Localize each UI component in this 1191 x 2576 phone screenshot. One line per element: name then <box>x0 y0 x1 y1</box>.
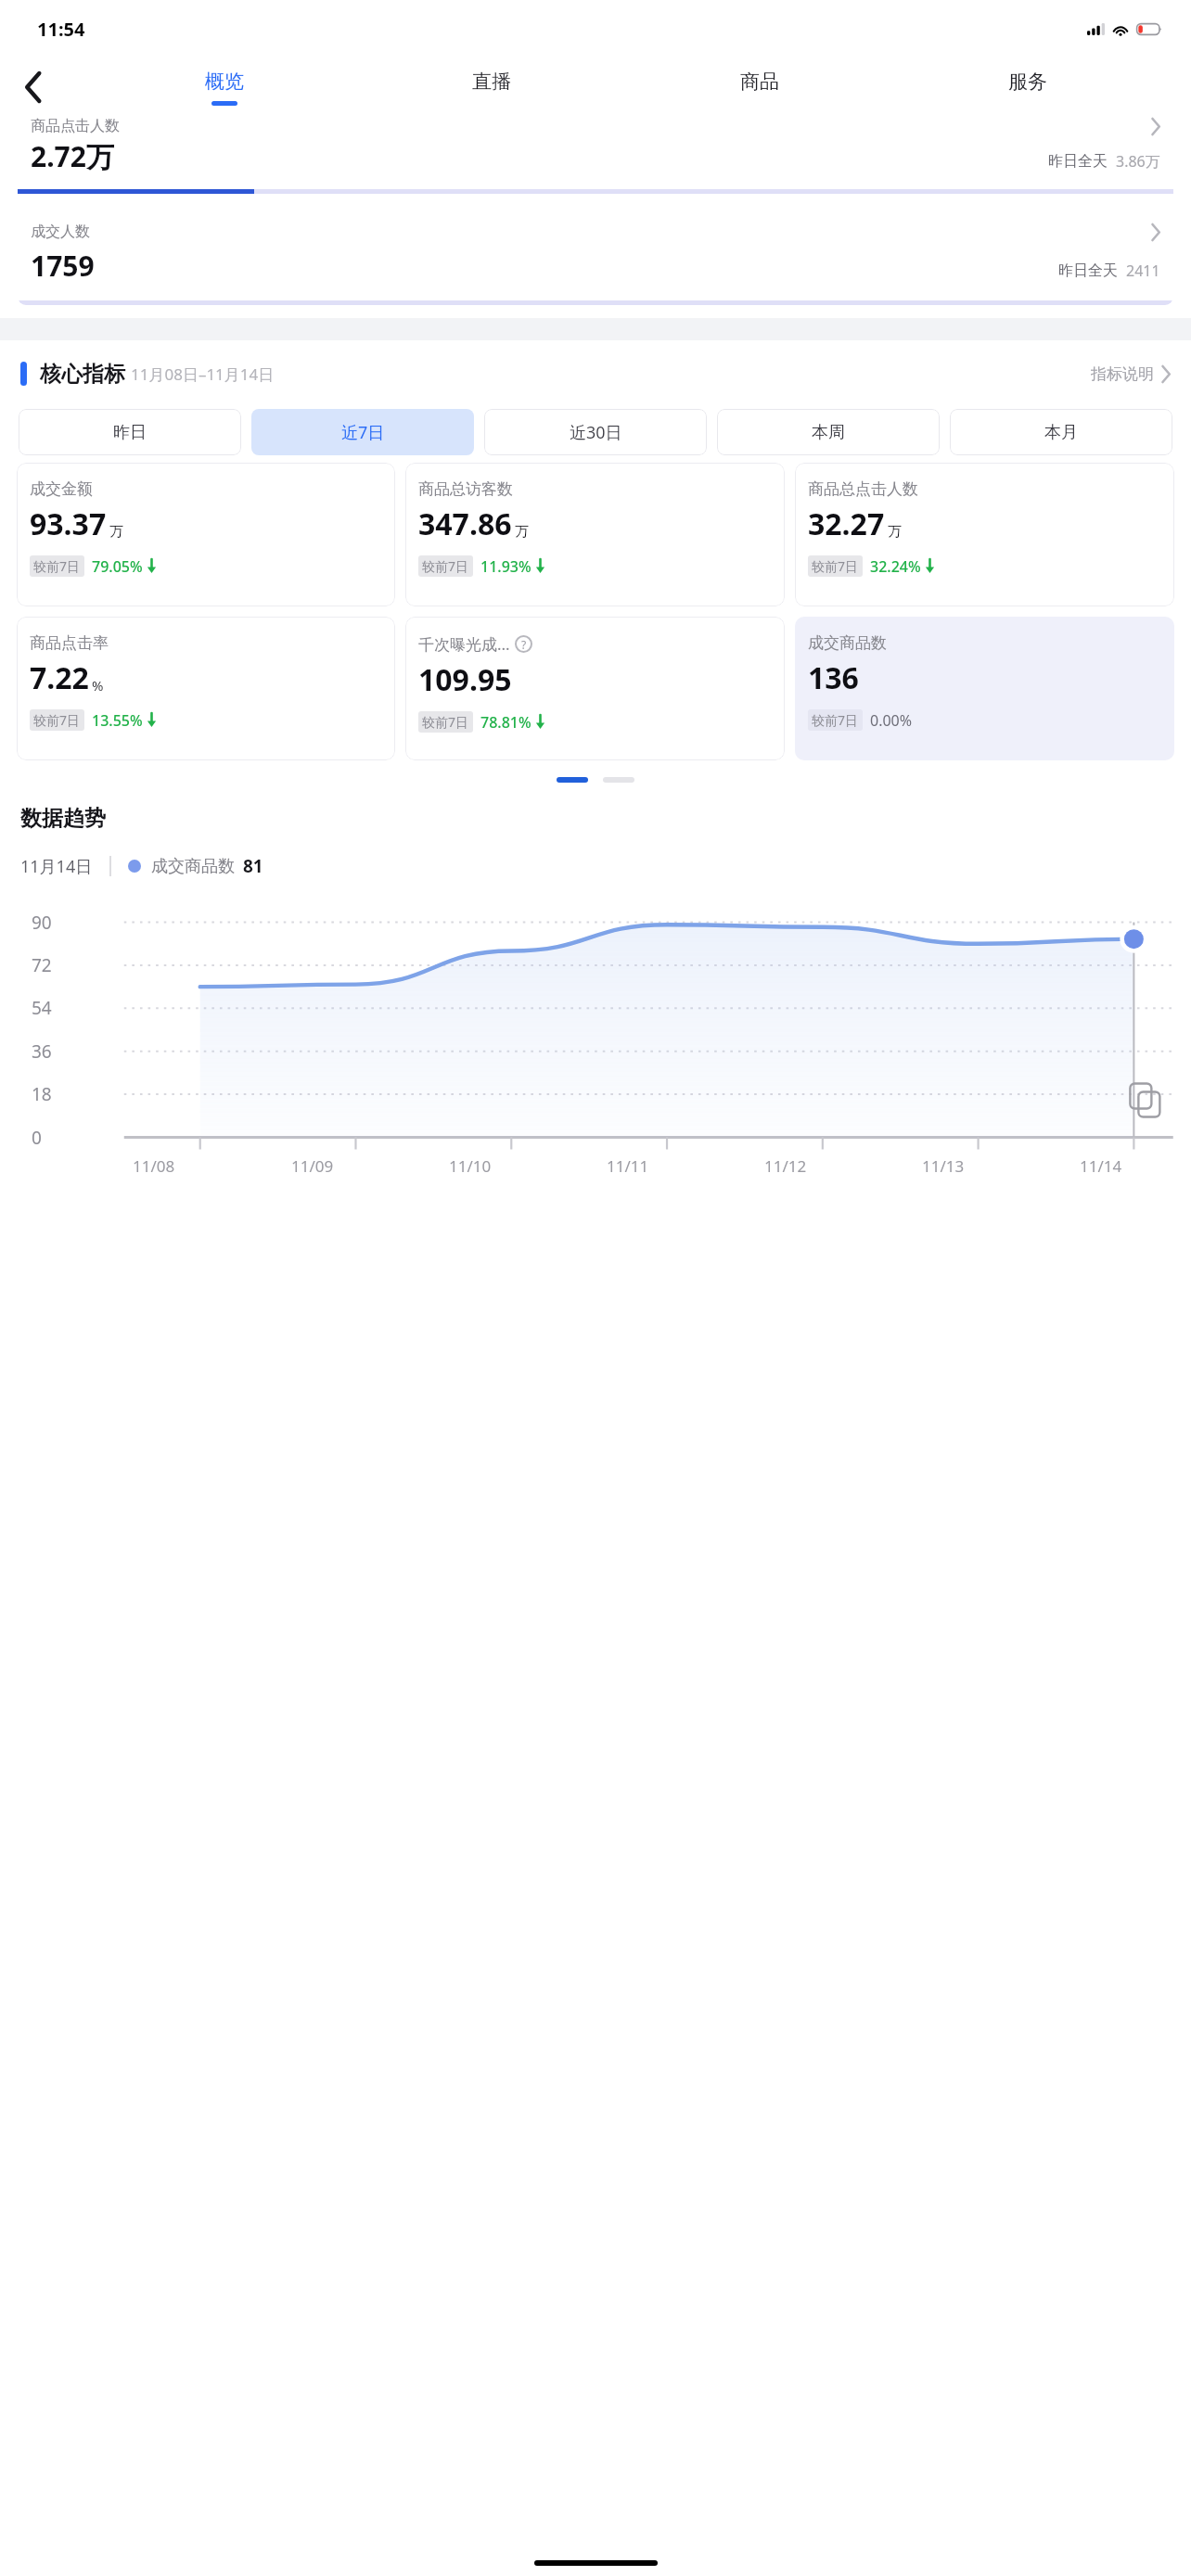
staticText: 2411 <box>1126 261 1160 281</box>
staticText: 较前7日 <box>812 711 859 729</box>
staticText: 万 <box>109 523 123 541</box>
staticText: 较前7日 <box>422 713 469 731</box>
staticText: 千次曝光成... <box>418 633 510 655</box>
staticText: 109.95 <box>418 659 512 700</box>
staticText: 11/13 <box>922 1155 965 1177</box>
button[interactable]: 商品总点击人数 <box>795 463 1174 606</box>
staticText: 万 <box>888 523 902 541</box>
staticText: 成交商品数 <box>151 856 235 877</box>
staticText: 指标说明 <box>1091 364 1154 384</box>
staticText: % <box>92 676 104 695</box>
staticText: 较前7日 <box>33 557 81 575</box>
staticText: 11/12 <box>764 1155 807 1177</box>
button[interactable]: 本月 <box>950 409 1172 455</box>
button[interactable]: 成交商品数 <box>795 617 1174 760</box>
staticText: 商品 <box>740 70 779 94</box>
staticText: 2.72万 <box>31 137 114 175</box>
staticText: 11.93% <box>480 556 531 577</box>
button[interactable]: 本周 <box>717 409 940 455</box>
staticText: 本月 <box>1044 422 1078 443</box>
staticText: 3.86万 <box>1116 151 1160 172</box>
staticText: 昨日 <box>113 422 147 443</box>
staticText: 直播 <box>472 70 511 94</box>
staticText: 成交金额 <box>30 479 93 499</box>
staticText: 11/11 <box>607 1155 649 1177</box>
staticText: 0 <box>32 1126 42 1150</box>
staticText: 0.00% <box>870 710 913 731</box>
button[interactable]: 成交人数 <box>18 206 1173 305</box>
button[interactable]: 指标说明 <box>1091 364 1171 384</box>
staticText: 本周 <box>812 422 845 443</box>
button[interactable]: 商品 <box>625 57 893 117</box>
staticText: 较前7日 <box>33 711 81 729</box>
staticText: 商品点击率 <box>30 633 109 653</box>
staticText: 昨日全天 <box>1048 152 1108 171</box>
button[interactable]: 近7日 <box>251 409 474 455</box>
staticText: 11/09 <box>291 1155 334 1177</box>
button[interactable]: 成交金额 <box>17 463 395 606</box>
staticText: 347.86 <box>418 504 512 544</box>
staticText: 较前7日 <box>422 557 469 575</box>
staticText: 成交人数 <box>31 223 90 241</box>
staticText: 72 <box>32 953 52 977</box>
button[interactable]: 概览 <box>91 57 358 117</box>
button[interactable]: 商品点击人数 <box>18 117 1173 194</box>
staticText: 32.24% <box>870 556 921 577</box>
staticText: 79.05% <box>92 556 143 577</box>
staticText: 32.27 <box>808 504 885 544</box>
staticText: 81 <box>243 854 263 878</box>
button[interactable]: 昨日 <box>19 409 241 455</box>
staticText: ? <box>521 637 527 652</box>
staticText: 11:54 <box>37 17 85 42</box>
staticText: 1759 <box>31 247 95 285</box>
staticText: 11/10 <box>449 1155 492 1177</box>
staticText: 136 <box>808 657 859 698</box>
staticText: 近30日 <box>570 421 622 444</box>
button[interactable]: 服务 <box>893 57 1161 117</box>
staticText: 11月08日–11月14日 <box>131 363 275 385</box>
button[interactable]: 商品点击率 <box>17 617 395 760</box>
staticText: 万 <box>515 523 529 541</box>
button[interactable]: 千次曝光成... <box>405 617 785 760</box>
staticText: 90 <box>32 911 52 935</box>
button[interactable]: Back <box>7 61 59 113</box>
staticText: 服务 <box>1008 70 1047 94</box>
staticText: 成交商品数 <box>808 633 887 653</box>
staticText: 11月14日 <box>20 855 93 878</box>
staticText: 93.37 <box>30 504 107 544</box>
staticText: 商品点击人数 <box>31 117 120 135</box>
staticText: 11/14 <box>1080 1155 1122 1177</box>
button[interactable]: 直播 <box>358 57 625 117</box>
staticText: 近7日 <box>341 421 385 444</box>
staticText: 数据趋势 <box>20 805 106 832</box>
staticText: 36 <box>32 1039 52 1064</box>
button[interactable]: 说明 <box>515 635 532 653</box>
staticText: 78.81% <box>480 712 531 733</box>
staticText: 13.55% <box>92 710 143 731</box>
button[interactable]: 商品总访客数 <box>405 463 785 606</box>
staticText: 昨日全天 <box>1058 261 1118 280</box>
staticText: 11/08 <box>133 1155 175 1177</box>
staticText: 18 <box>32 1082 52 1106</box>
staticText: 较前7日 <box>812 557 859 575</box>
staticText: 核心指标 <box>40 361 125 388</box>
staticText: 商品总访客数 <box>418 479 513 499</box>
staticText: 概览 <box>205 70 244 94</box>
staticText: 54 <box>32 996 52 1020</box>
staticText: 7.22 <box>30 657 89 698</box>
button[interactable]: 近30日 <box>484 409 707 455</box>
staticText: 商品总点击人数 <box>808 479 918 499</box>
